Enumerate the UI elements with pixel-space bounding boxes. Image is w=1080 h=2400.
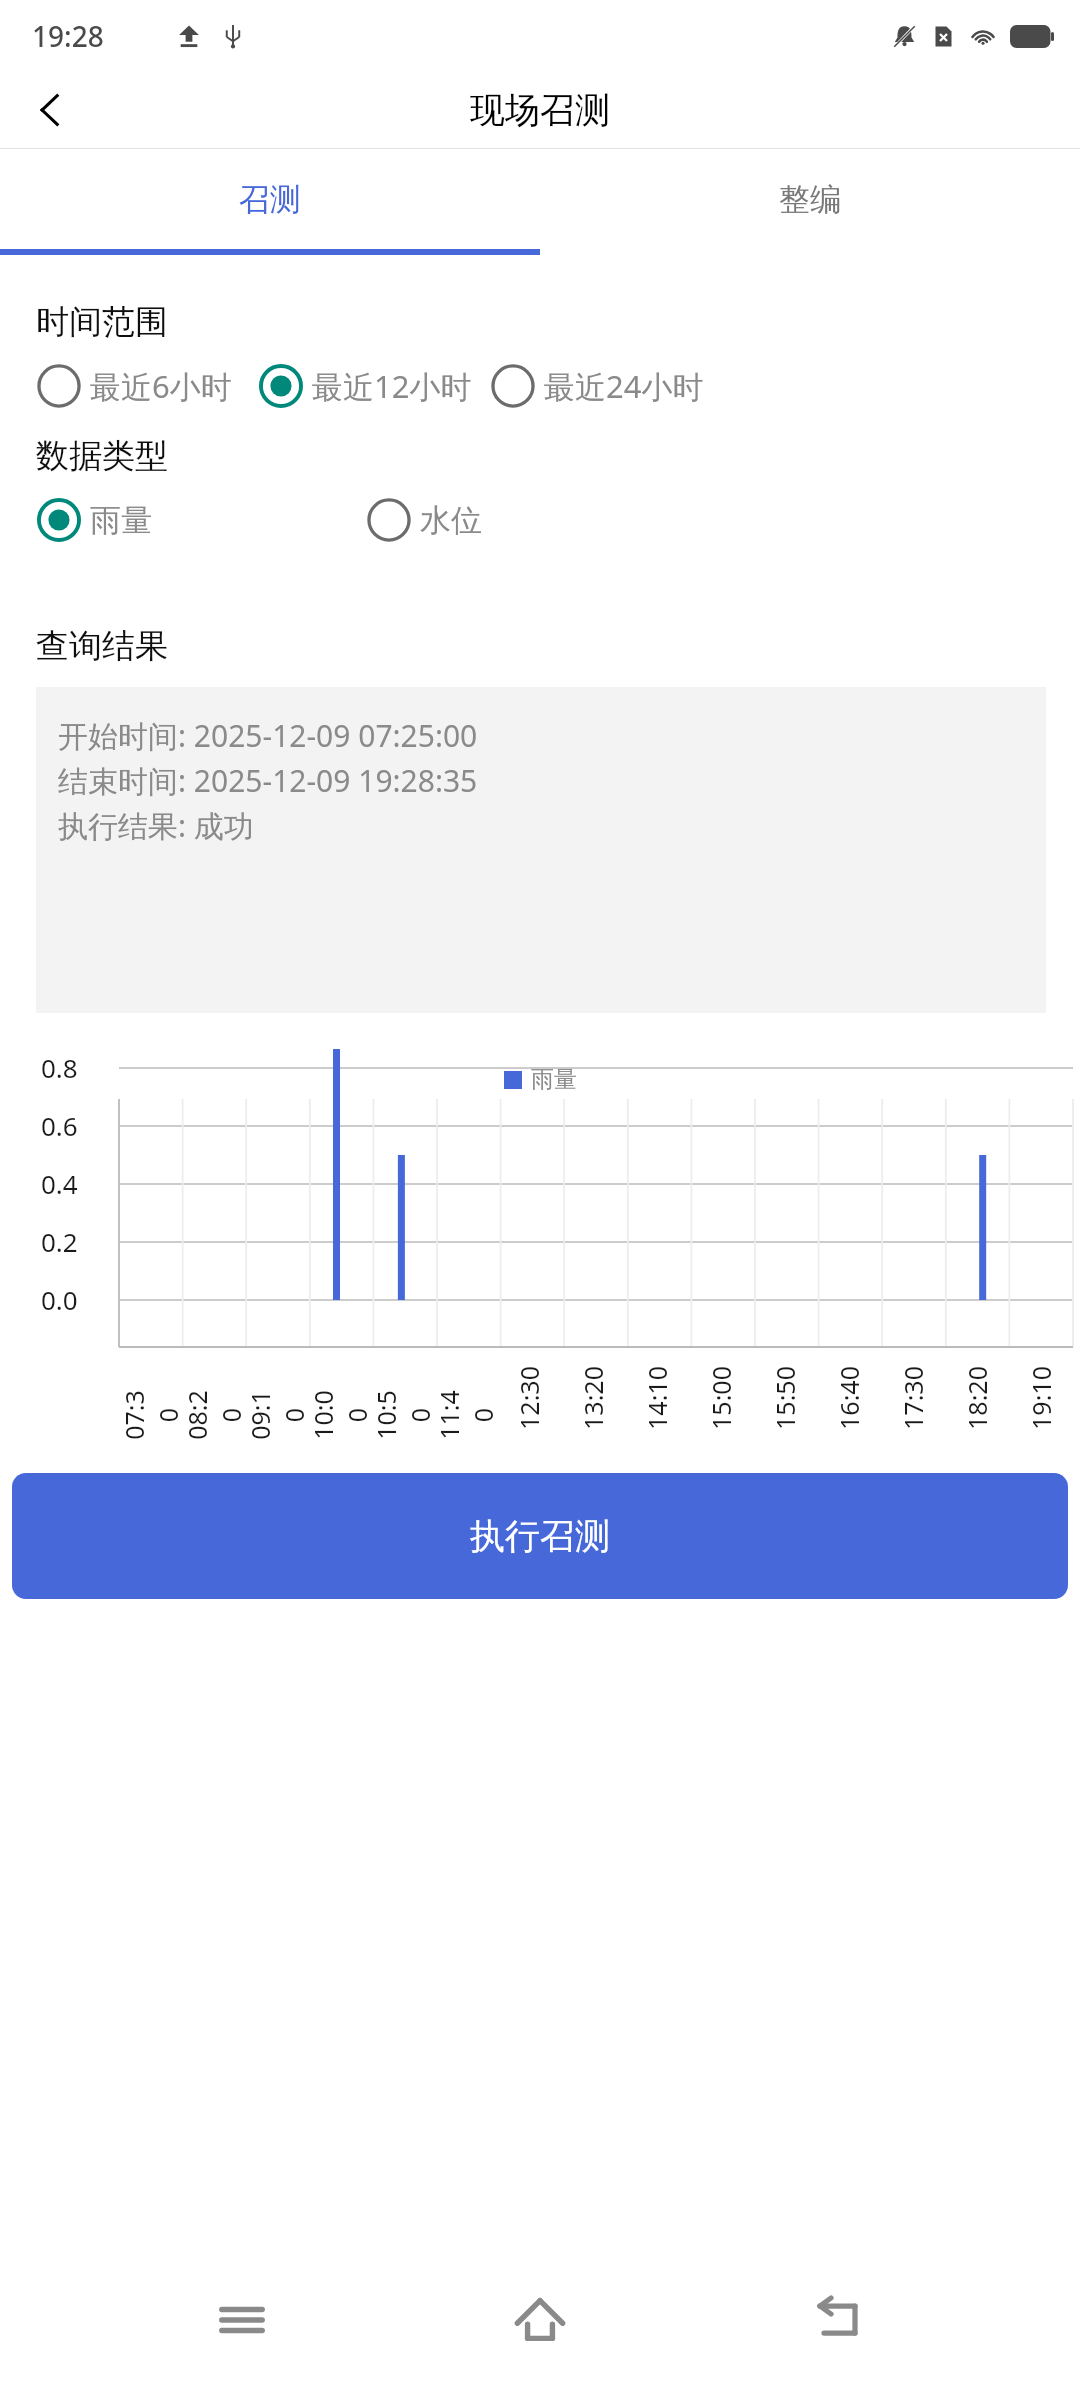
staticText: 查询结果 (36, 625, 168, 667)
staticText: 09:10 (242, 1383, 310, 1446)
staticText: 08:20 (179, 1383, 247, 1446)
staticText: 13:20 (576, 1366, 610, 1430)
staticText: 10:50 (368, 1383, 436, 1446)
button[interactable]: 执行召测 (12, 1473, 1068, 1599)
button[interactable]: 最近6小时 (36, 363, 232, 409)
staticText: 0.8 (41, 1050, 78, 1085)
button[interactable]: 整编 (540, 149, 1080, 249)
staticText: 15:50 (768, 1366, 802, 1430)
staticText: 数据类型 (36, 435, 168, 477)
staticText: 现场召测 (470, 88, 610, 132)
staticText: 19:10 (1024, 1366, 1058, 1430)
staticText: 0.2 (41, 1224, 78, 1259)
staticText: 结束时间: 2025-12-09 19:28:35 (58, 760, 478, 801)
staticText: 水位 (420, 501, 482, 540)
staticText: 0.4 (41, 1166, 78, 1201)
staticText: 16:40 (832, 1366, 866, 1430)
staticText: 最近6小时 (90, 365, 232, 407)
staticText: 雨量 (531, 1065, 577, 1094)
staticText: 执行召测 (470, 1514, 610, 1558)
staticText: 0.6 (41, 1108, 78, 1143)
button[interactable]: 水位 (366, 497, 482, 543)
staticText: 时间范围 (36, 301, 168, 343)
staticText: 最近24小时 (544, 365, 704, 407)
button[interactable]: 最近24小时 (490, 363, 704, 409)
staticText: 11:40 (431, 1383, 499, 1446)
staticText: 12:30 (512, 1366, 546, 1430)
button[interactable]: Back (12, 72, 88, 148)
button[interactable]: 召测 (0, 149, 540, 249)
staticText: 执行结果: 成功 (58, 805, 254, 846)
button[interactable]: 雨量 (36, 497, 366, 543)
staticText: 18:20 (960, 1366, 994, 1430)
button[interactable]: 最近12小时 (258, 363, 472, 409)
staticText: 开始时间: 2025-12-09 07:25:00 (58, 715, 478, 756)
staticText: 19:28 (32, 17, 104, 55)
button[interactable]: Recent apps (186, 2264, 298, 2376)
staticText: 10:00 (305, 1383, 373, 1446)
button[interactable]: Home (484, 2264, 596, 2376)
staticText: 整编 (779, 180, 841, 219)
staticText: 07:30 (116, 1383, 184, 1446)
staticText: 雨量 (90, 501, 152, 540)
button[interactable]: Back (782, 2264, 894, 2376)
staticText: 15:00 (704, 1366, 738, 1430)
staticText: 0.0 (41, 1282, 78, 1317)
staticText: 14:10 (640, 1366, 674, 1430)
staticText: 召测 (239, 180, 301, 219)
staticText: 17:30 (896, 1366, 930, 1430)
staticText: 最近12小时 (312, 365, 472, 407)
